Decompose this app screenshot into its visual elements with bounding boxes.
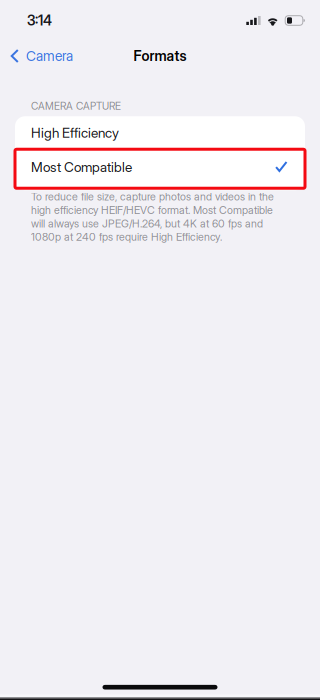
- staticText: Camera: [26, 48, 73, 64]
- staticText: To reduce file size, capture photos and …: [31, 190, 274, 243]
- staticText: 3:14: [27, 12, 52, 29]
- button[interactable]: Most Compatible: [15, 150, 305, 190]
- staticText: Most Compatible: [31, 159, 132, 175]
- staticText: Formats: [133, 47, 186, 64]
- staticText: CAMERA CAPTURE: [31, 100, 121, 112]
- staticText: High Efficiency: [31, 124, 119, 141]
- button[interactable]: Camera: [0, 41, 83, 71]
- button[interactable]: High Efficiency: [15, 116, 305, 149]
